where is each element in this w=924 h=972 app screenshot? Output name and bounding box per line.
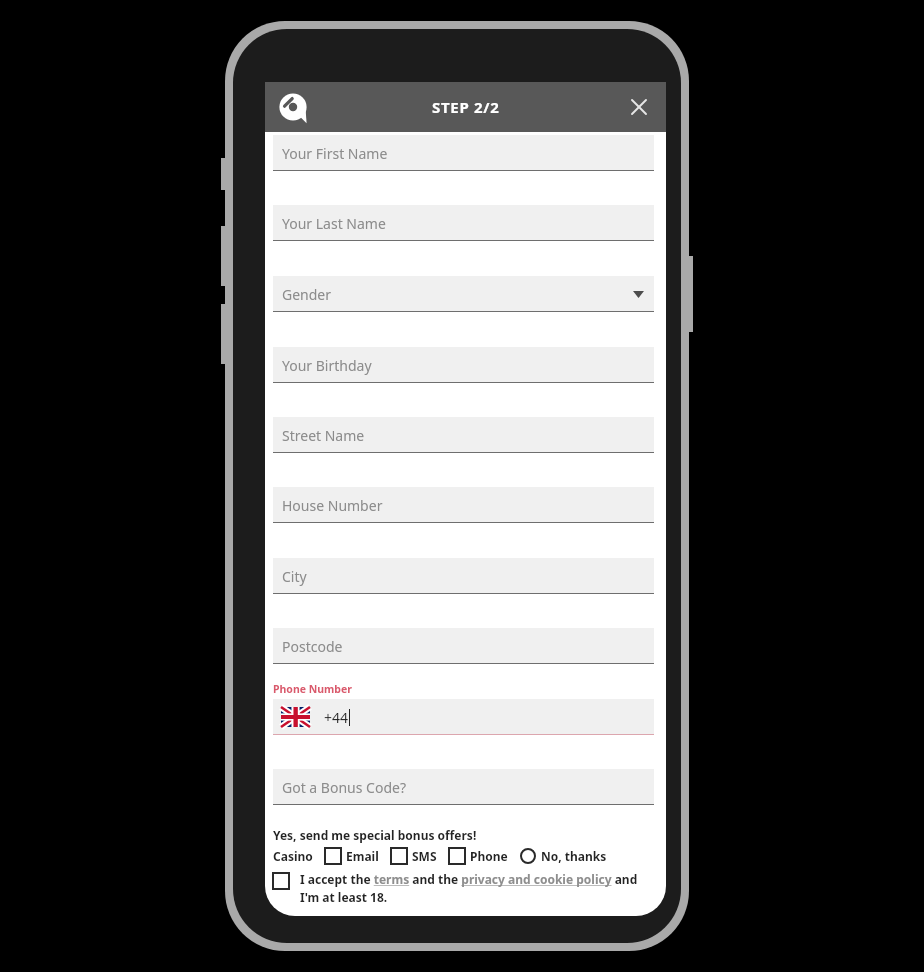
staticText: Email	[346, 848, 379, 864]
button[interactable]: Phone	[449, 848, 508, 864]
staticText: City	[282, 567, 307, 586]
button[interactable]: SMS	[391, 848, 437, 864]
staticText: SMS	[412, 848, 437, 864]
staticText: STEP 2/2	[432, 97, 500, 117]
staticText: Your Last Name	[282, 214, 386, 233]
staticText: House Number	[282, 496, 383, 515]
button[interactable]: No, thanks	[520, 848, 607, 864]
staticText: Casino	[273, 848, 313, 864]
staticText: Street Name	[282, 426, 365, 445]
staticText: Your Birthday	[282, 356, 372, 375]
staticText: Yes, send me special bonus offers!	[273, 827, 477, 843]
button[interactable]: Your Last Name	[273, 205, 654, 241]
button[interactable]: Got a Bonus Code?	[273, 769, 654, 805]
button[interactable]: Brand logo	[276, 90, 310, 124]
button[interactable]: Email	[325, 848, 379, 864]
button[interactable]: I accept the terms and the privacy and c…	[273, 871, 647, 906]
staticText: Phone Number	[273, 682, 352, 696]
button[interactable]: Gender	[273, 276, 654, 312]
staticText: Your First Name	[282, 144, 388, 163]
staticText: I accept the terms and the privacy and c…	[300, 871, 647, 906]
button[interactable]: Close	[626, 94, 652, 120]
button[interactable]: House Number	[273, 487, 654, 523]
button[interactable]: +44	[273, 699, 654, 735]
button[interactable]: Your First Name	[273, 135, 654, 171]
button[interactable]: City	[273, 558, 654, 594]
staticText: Phone	[470, 848, 508, 864]
button[interactable]: Postcode	[273, 628, 654, 664]
staticText: Postcode	[282, 637, 343, 656]
staticText: Got a Bonus Code?	[282, 778, 406, 797]
staticText: No, thanks	[541, 848, 607, 864]
staticText: +44	[324, 708, 349, 727]
button[interactable]: Street Name	[273, 417, 654, 453]
button[interactable]: Your Birthday	[273, 347, 654, 383]
staticText: Gender	[282, 285, 332, 304]
